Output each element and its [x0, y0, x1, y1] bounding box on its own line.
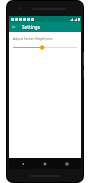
staticText: Settings — [22, 24, 40, 30]
button[interactable]: Back — [9, 22, 19, 32]
button[interactable]: Home — [37, 158, 53, 169]
staticText: Adjust Screen Brightness — [13, 36, 53, 41]
button[interactable]: Back — [15, 158, 31, 169]
button[interactable]: Brightness slider — [13, 44, 77, 51]
button[interactable]: Recent apps — [59, 158, 75, 169]
